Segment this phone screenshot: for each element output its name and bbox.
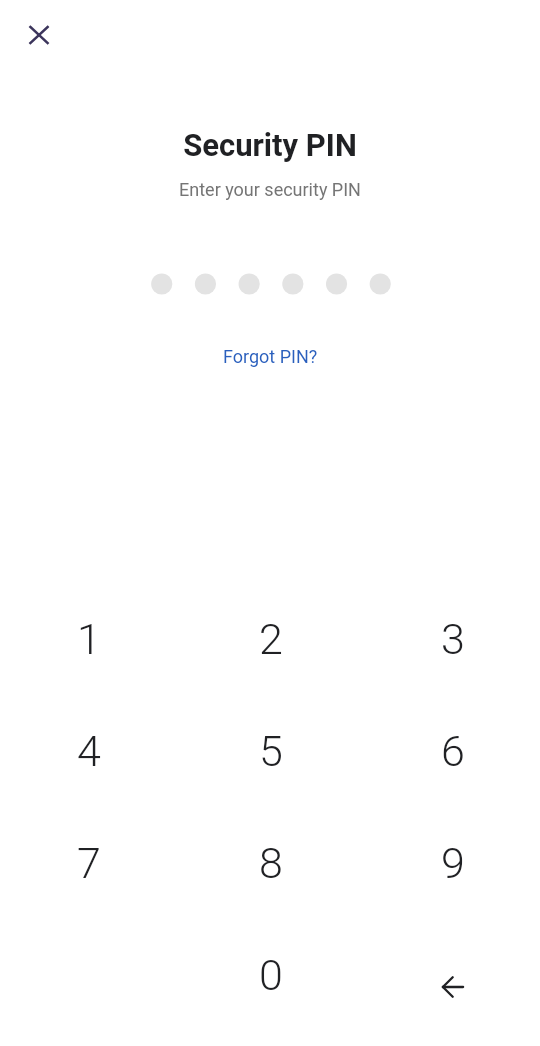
staticText: 4 (77, 726, 101, 776)
button[interactable]: Backspace (362, 919, 540, 1031)
button[interactable]: 3 (362, 583, 540, 695)
button[interactable]: 7 (0, 807, 180, 919)
button[interactable]: 5 (180, 695, 362, 807)
button[interactable]: Close (14, 10, 62, 58)
staticText: 9 (441, 838, 465, 888)
button[interactable]: 4 (0, 695, 180, 807)
button[interactable]: Forgot PIN? (213, 340, 328, 373)
staticText: 1 (77, 614, 101, 664)
button[interactable]: 1 (0, 583, 180, 695)
button[interactable]: 0 (180, 919, 362, 1031)
staticText: 3 (441, 614, 465, 664)
button[interactable]: 6 (362, 695, 540, 807)
staticText: 5 (259, 726, 283, 776)
staticText: 8 (259, 838, 283, 888)
staticText: Enter your security PIN (179, 179, 361, 200)
button[interactable]: 2 (180, 583, 362, 695)
button[interactable]: 8 (180, 807, 362, 919)
staticText: 2 (259, 614, 283, 664)
staticText: Forgot PIN? (223, 346, 318, 367)
staticText: 0 (259, 950, 283, 1000)
staticText: 6 (441, 726, 465, 776)
staticText: 7 (77, 838, 101, 888)
button[interactable]: 9 (362, 807, 540, 919)
staticText: Security PIN (183, 127, 357, 163)
